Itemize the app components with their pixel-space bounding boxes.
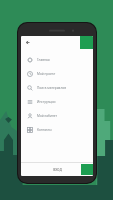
staticText: ВХОД xyxy=(53,168,62,172)
button[interactable]: Поиск материалов xyxy=(21,81,93,95)
staticText: Контакты xyxy=(37,128,52,132)
staticText: Инструкции xyxy=(37,100,56,104)
button[interactable]: Инструкции xyxy=(21,95,93,109)
button[interactable]: ВХОД xyxy=(48,166,67,174)
button[interactable]: Back xyxy=(24,39,31,46)
button[interactable]: Главная xyxy=(21,53,93,67)
staticText: Мой проект xyxy=(37,72,56,76)
staticText: Главная xyxy=(37,58,50,62)
button[interactable]: Мой проект xyxy=(21,67,93,81)
button[interactable]: Контакты xyxy=(21,123,93,137)
button[interactable]: Мой кабинет xyxy=(21,109,93,123)
staticText: Поиск материалов xyxy=(37,86,66,90)
staticText: Мой кабинет xyxy=(37,114,58,118)
button[interactable]: Action xyxy=(80,36,93,49)
